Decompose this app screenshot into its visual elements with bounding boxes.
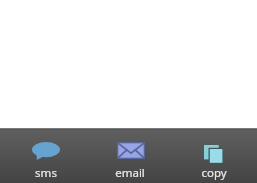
button[interactable]: Copy to clipboard [172,130,256,183]
staticText: sms [35,165,57,181]
staticText: copy [201,165,227,181]
button[interactable]: Send via SMS [4,130,88,183]
button[interactable]: Send via email [88,130,172,183]
staticText: email [115,165,145,181]
